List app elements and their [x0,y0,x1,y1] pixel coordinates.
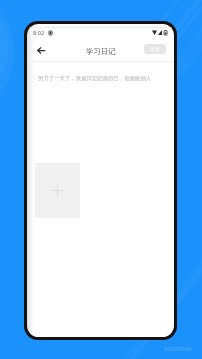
staticText: 发布 [150,46,160,52]
staticText: 努力了一天了，发篇日记记录自己，也激励别人 [38,75,152,82]
button[interactable]: Back [31,41,50,60]
staticText: 2020YEAR [164,345,192,352]
staticText: 学习日记 [86,47,116,56]
button[interactable]: 发布 [144,44,166,54]
staticText: 8:02 [33,29,45,37]
